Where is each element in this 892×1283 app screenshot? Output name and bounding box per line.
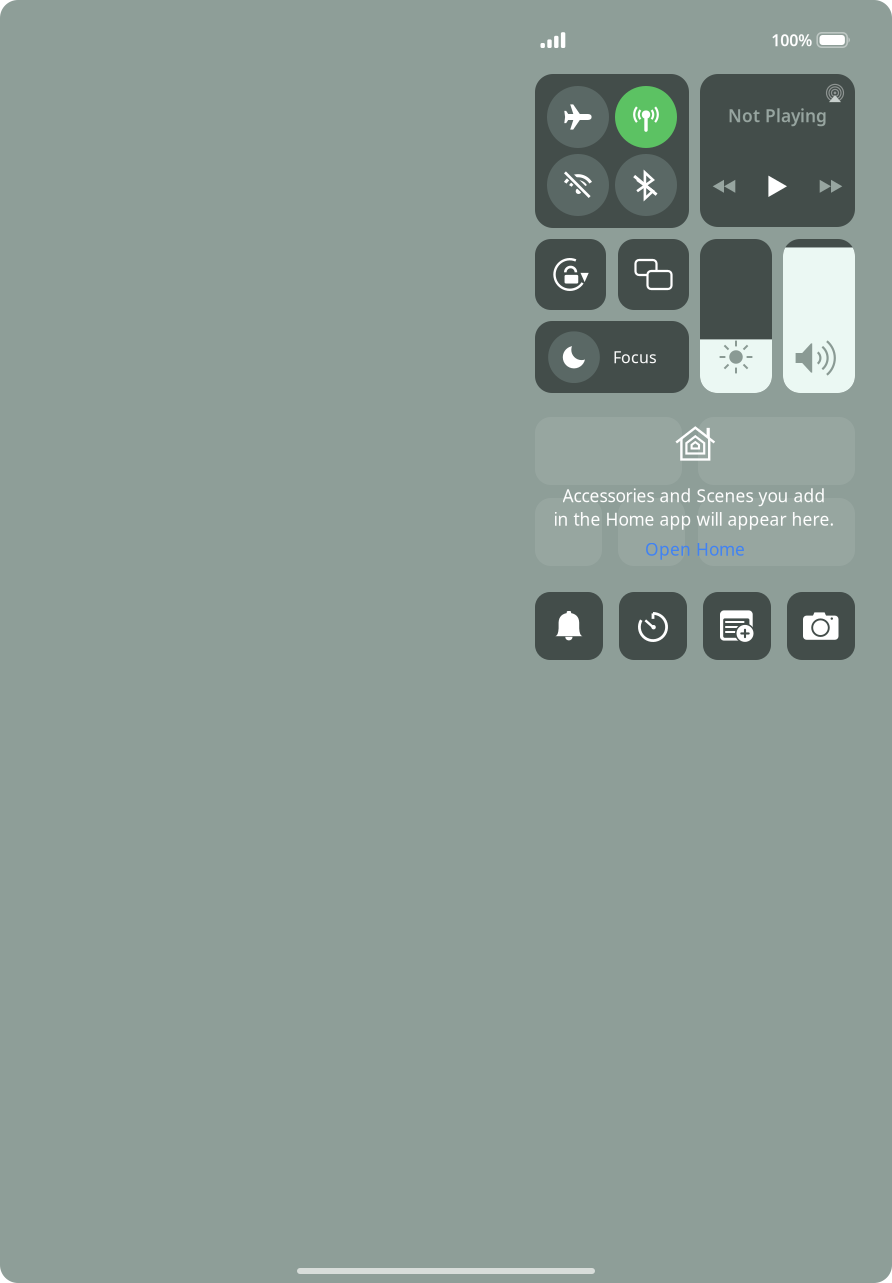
staticText: Focus bbox=[613, 346, 657, 368]
button[interactable]: Silent Mode bbox=[535, 592, 603, 660]
staticText: Accessories and Scenes you add bbox=[562, 484, 825, 507]
button[interactable]: AirPlay bbox=[824, 83, 846, 105]
button[interactable]: Focus bbox=[535, 321, 689, 393]
staticText: 100% bbox=[771, 29, 812, 51]
button[interactable]: Brightness bbox=[700, 239, 772, 393]
button[interactable]: Airplane Mode bbox=[547, 86, 609, 148]
button[interactable]: Notes bbox=[703, 592, 771, 660]
button[interactable]: Open Home bbox=[635, 536, 755, 562]
staticText: in the Home app will appear here. bbox=[553, 507, 834, 530]
button[interactable]: Volume bbox=[783, 239, 855, 393]
button[interactable]: Next bbox=[809, 165, 853, 207]
button[interactable]: Bluetooth bbox=[615, 154, 677, 216]
button[interactable]: Cellular Data bbox=[615, 86, 677, 148]
staticText: Open Home bbox=[645, 537, 745, 560]
button[interactable]: Play bbox=[755, 165, 799, 207]
button[interactable]: Wi-Fi bbox=[547, 154, 609, 216]
button[interactable]: Timer bbox=[619, 592, 687, 660]
staticText: Not Playing bbox=[728, 104, 827, 127]
button[interactable]: Rotation Lock bbox=[535, 239, 606, 310]
button[interactable]: Previous bbox=[702, 165, 746, 207]
button[interactable]: Screen Mirroring bbox=[618, 239, 689, 310]
button[interactable]: Camera bbox=[787, 592, 855, 660]
